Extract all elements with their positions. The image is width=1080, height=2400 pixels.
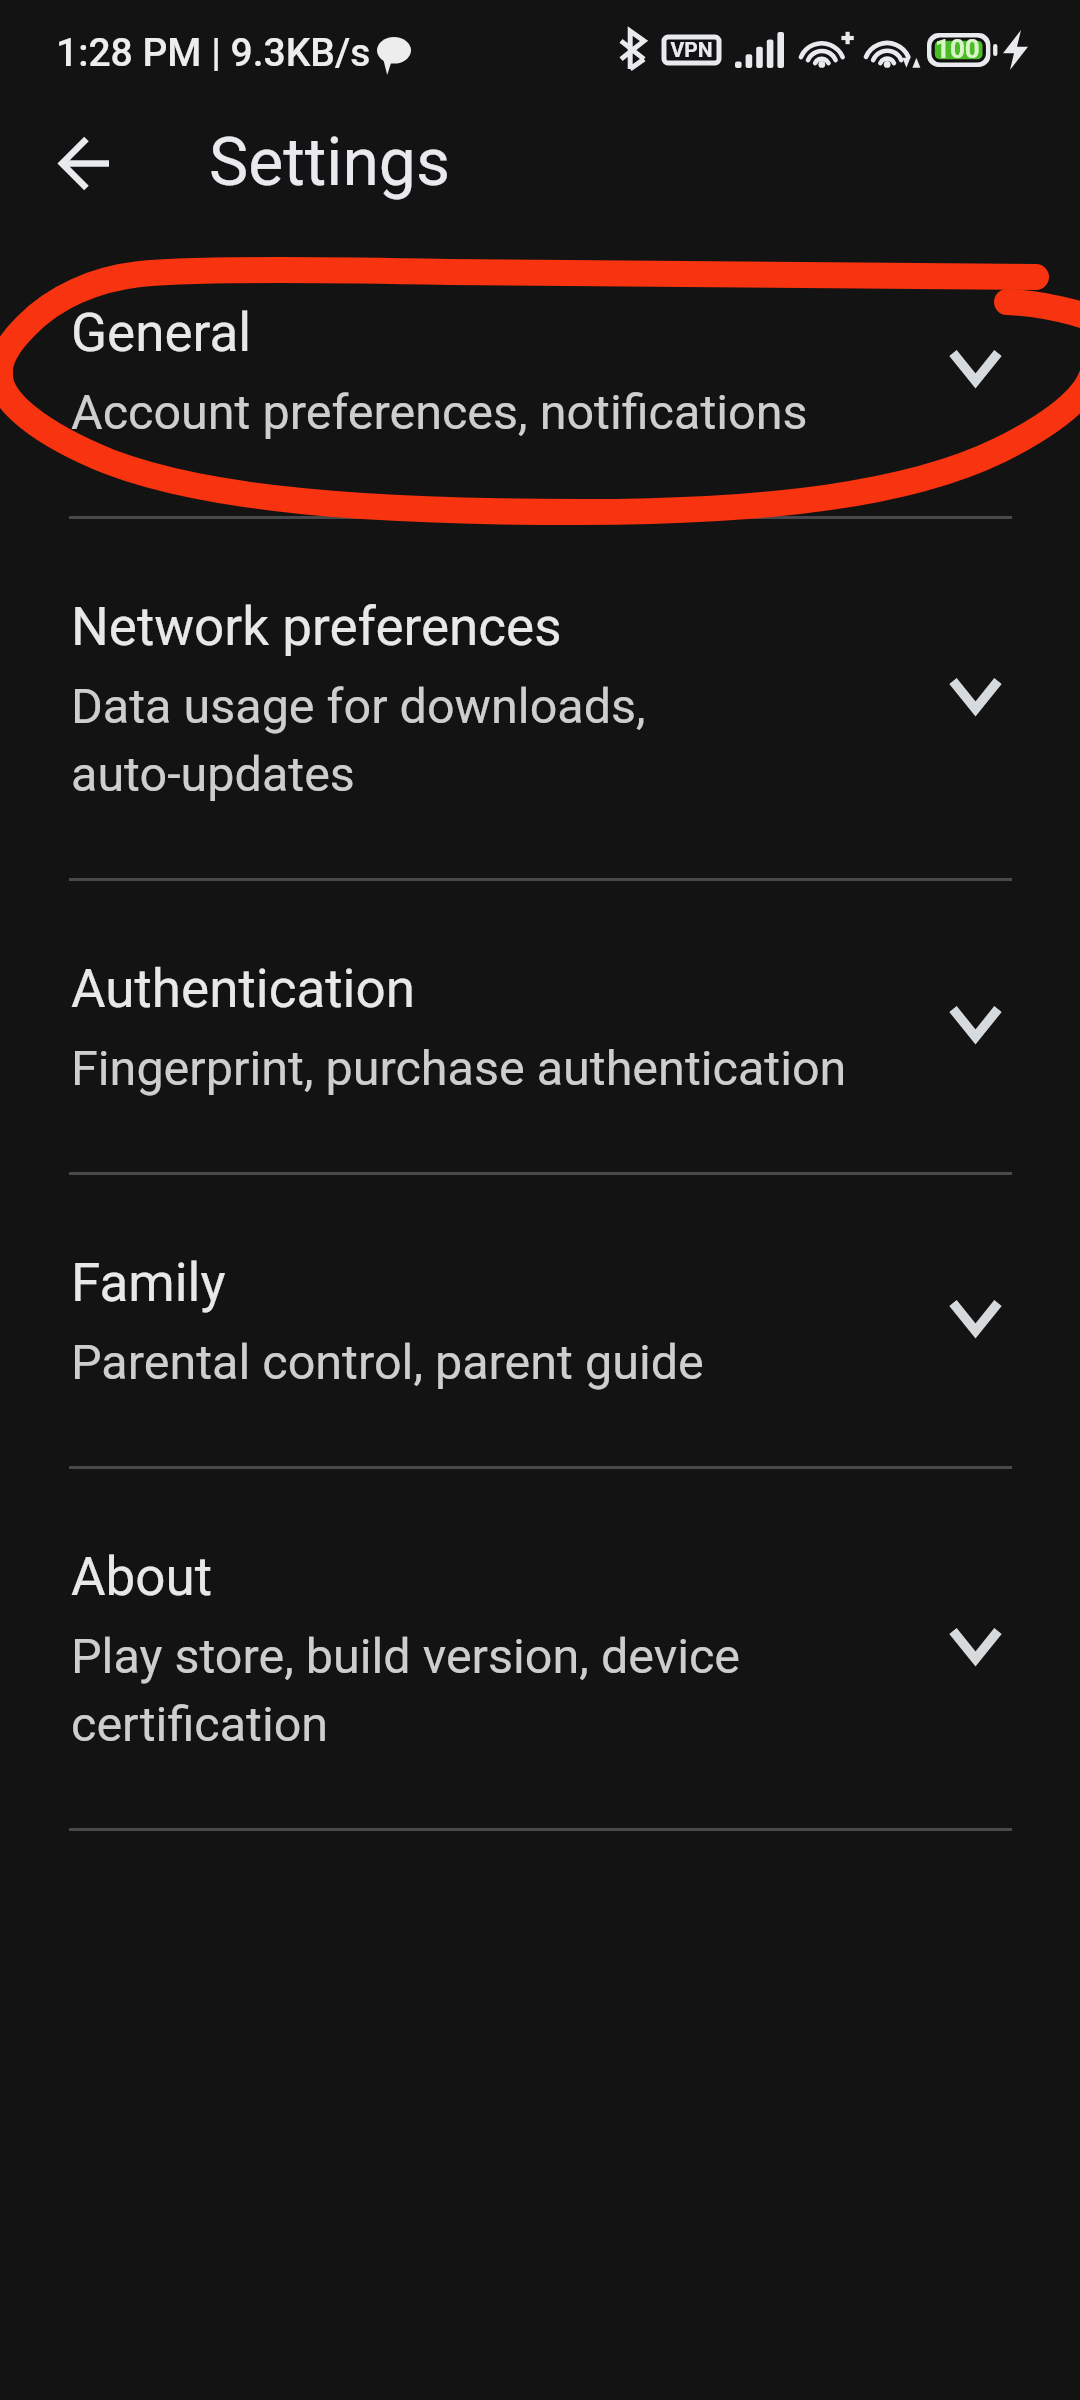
staticText: About	[71, 1544, 213, 1608]
staticText: Settings	[209, 124, 450, 201]
staticText: 1:28 PM | 9.3KB/s	[56, 30, 371, 76]
button[interactable]: General	[0, 223, 1080, 517]
staticText: Account preferences, notifications	[71, 375, 808, 443]
staticText: Family	[71, 1250, 226, 1314]
button[interactable]: Family	[0, 1173, 1080, 1467]
button[interactable]: Network preferences	[0, 517, 1080, 879]
staticText: Play store, build version, device certif…	[71, 1619, 741, 1755]
staticText: VPN	[670, 38, 713, 63]
button[interactable]: About	[0, 1467, 1080, 1829]
staticText: Fingerprint, purchase authentication	[71, 1031, 847, 1099]
button[interactable]: Authentication	[0, 879, 1080, 1173]
staticText: Data usage for downloads, auto-updates	[71, 669, 646, 805]
staticText: Network preferences	[71, 594, 562, 658]
staticText: Parental control, parent guide	[71, 1325, 704, 1393]
staticText: Authentication	[71, 956, 415, 1020]
staticText: 100	[935, 34, 980, 64]
staticText: General	[71, 300, 252, 364]
button[interactable]: Back	[37, 116, 131, 210]
